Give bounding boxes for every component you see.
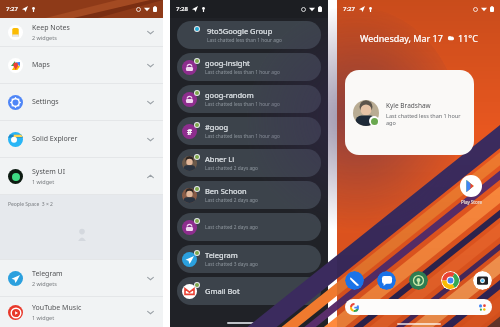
button[interactable]: Maps (0, 47, 163, 83)
button[interactable]: Keep Notes (0, 18, 163, 46)
button[interactable]: Phone (345, 271, 364, 290)
other: Expand (146, 274, 155, 283)
staticText: 7:27 (6, 5, 18, 13)
staticText: Gmail Bot (205, 286, 240, 296)
staticText: Maps (32, 60, 50, 70)
staticText: 1 widget (32, 314, 55, 321)
button[interactable]: Gmail Bot (177, 277, 321, 305)
staticText: 11°C (458, 32, 478, 44)
staticText: Abner Li (205, 154, 235, 164)
staticText: Keep Notes (32, 23, 70, 33)
button[interactable]: Telegram (177, 245, 321, 273)
button[interactable]: Solid Explorer (0, 121, 163, 157)
other: Expand (146, 98, 155, 107)
staticText: Solid Explorer (32, 134, 78, 144)
staticText: 1 widget (32, 178, 55, 185)
staticText: 2 widgets (32, 280, 57, 287)
staticText: People Space 3 × 2 (8, 201, 53, 208)
staticText: # (187, 126, 193, 137)
button[interactable]: Play Store (460, 175, 482, 197)
button[interactable]: Abner Li (177, 149, 321, 177)
button[interactable]: goog-random (177, 85, 321, 113)
button[interactable]: Messages (377, 271, 396, 290)
staticText: Telegram (32, 269, 63, 279)
button[interactable]: Last chatted 2 days ago (177, 213, 321, 241)
staticText: System UI (32, 167, 66, 177)
other: Expand (146, 135, 155, 144)
staticText: Last chatted less than 1 hour ago (205, 101, 280, 108)
staticText: goog-insight (205, 58, 250, 68)
staticText: Last chatted less than 1 hour ago (205, 69, 280, 76)
staticText: goog-random (205, 90, 254, 100)
other: Expand (146, 61, 155, 70)
button[interactable]: Ben Schoon (177, 181, 321, 209)
staticText: Kyle Bradshaw (386, 101, 431, 110)
staticText: 2 widgets (32, 34, 57, 41)
button[interactable]: System UI (0, 158, 163, 194)
button[interactable]: Camera (473, 271, 492, 290)
staticText: Last chatted less than 1 hour ago (205, 133, 280, 140)
other: Expand (146, 28, 155, 37)
staticText: Play Store (461, 199, 482, 205)
staticText: Ben Schoon (205, 186, 247, 196)
staticText: Wednesday, Mar 17 (360, 32, 443, 44)
staticText: YouTube Music (32, 303, 82, 313)
other: Expand (146, 172, 155, 181)
button[interactable]: 9to5Google Group (177, 21, 321, 49)
staticText: Telegram (205, 250, 238, 260)
staticText: Last chatted 2 days ago (205, 197, 258, 204)
button[interactable] (345, 299, 492, 315)
staticText: #goog (205, 122, 229, 132)
other: Expand (146, 308, 155, 317)
button[interactable]: Settings (0, 84, 163, 120)
button[interactable]: Kyle Bradshaw (345, 70, 474, 155)
staticText: Settings (32, 97, 59, 107)
staticText: 7:28 (176, 5, 188, 13)
button[interactable]: Chrome (441, 271, 460, 290)
button[interactable]: Wednesday, Mar 17 (337, 32, 500, 44)
button[interactable]: goog-insight (177, 53, 321, 81)
staticText: Last chatted 2 days ago (205, 224, 258, 231)
staticText: Last chatted 2 days ago (205, 165, 258, 172)
button[interactable]: # (177, 117, 321, 145)
staticText: Last chatted 3 days ago (205, 261, 258, 268)
button[interactable]: Telegram (0, 260, 163, 296)
staticText: 7:27 (343, 5, 355, 13)
staticText: Last chatted less than 1 hour ago (386, 112, 466, 126)
staticText: 9to5Google Group (207, 26, 273, 36)
staticText: Last chatted less than 1 hour ago (207, 37, 282, 44)
button[interactable]: Play Games (409, 271, 428, 290)
button[interactable]: YouTube Music (0, 297, 163, 327)
